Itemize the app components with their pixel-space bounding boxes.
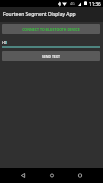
button[interactable]: Home bbox=[43, 168, 60, 183]
staticText: 11:36 bbox=[89, 1, 101, 7]
button[interactable]: SEND TEXT bbox=[2, 51, 100, 61]
button[interactable]: HI bbox=[2, 38, 100, 46]
staticText: 4G bbox=[70, 1, 75, 6]
staticText: HI bbox=[2, 40, 6, 45]
staticText: Fourteen Segment Display App bbox=[3, 11, 76, 18]
staticText: SEND TEXT bbox=[42, 54, 60, 59]
button[interactable]: CONNECT TO BLUETOOTH DEVICE bbox=[2, 24, 100, 34]
button[interactable]: Back bbox=[14, 168, 31, 183]
staticText: CONNECT TO BLUETOOTH DEVICE bbox=[22, 27, 80, 32]
button[interactable]: Recents bbox=[71, 168, 88, 183]
